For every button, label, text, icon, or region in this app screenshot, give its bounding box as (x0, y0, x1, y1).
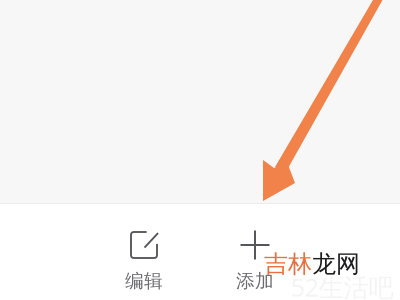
button[interactable]: 添加 (207, 226, 303, 290)
staticText: 龙网 (312, 249, 360, 279)
button[interactable]: 编辑 (96, 226, 192, 290)
staticText: 吉林 (264, 249, 312, 279)
staticText: 添加 (236, 269, 274, 292)
staticText: 52生活吧 (290, 270, 393, 300)
staticText: 编辑 (125, 269, 163, 292)
